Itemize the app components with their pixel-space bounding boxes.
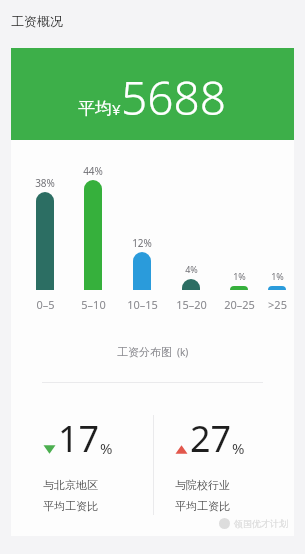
staticText: 12%	[132, 236, 152, 250]
other: Decrease	[43, 443, 56, 456]
staticText: 与	[43, 478, 54, 492]
staticText: 平均	[78, 98, 112, 119]
other: Increase	[175, 443, 188, 456]
staticText: %	[232, 438, 245, 458]
staticText: 1%	[271, 270, 284, 282]
staticText: 44%	[83, 164, 103, 178]
staticText: 平均工资比	[175, 499, 230, 513]
staticText: ¥	[112, 99, 121, 119]
staticText: 27	[190, 414, 232, 463]
staticText: 4%	[185, 263, 198, 275]
staticText: 15–20	[176, 297, 207, 312]
button[interactable]: 平均	[11, 48, 294, 140]
staticText: 0–5	[36, 297, 55, 312]
staticText: 5–10	[81, 297, 106, 312]
staticText: %	[100, 438, 113, 458]
staticText: 与	[175, 478, 186, 492]
staticText: 10–15	[127, 297, 158, 312]
staticText: 17	[58, 414, 100, 463]
staticText: 领国优才计划	[234, 518, 288, 529]
staticText: 20–25	[224, 297, 255, 312]
staticText: 工资分布图	[117, 345, 172, 359]
staticText: >25	[268, 297, 287, 312]
staticText: 院校行业	[186, 478, 230, 492]
staticText: 5688	[121, 66, 227, 129]
staticText: 工资概况	[11, 13, 63, 29]
button[interactable]: Increase	[175, 414, 285, 513]
staticText: (k)	[177, 345, 189, 359]
staticText: 38%	[35, 176, 55, 190]
staticText: 平均工资比	[43, 499, 98, 513]
staticText: 1%	[233, 270, 246, 282]
button[interactable]: Decrease	[43, 414, 153, 513]
staticText: 北京地区	[54, 478, 98, 492]
